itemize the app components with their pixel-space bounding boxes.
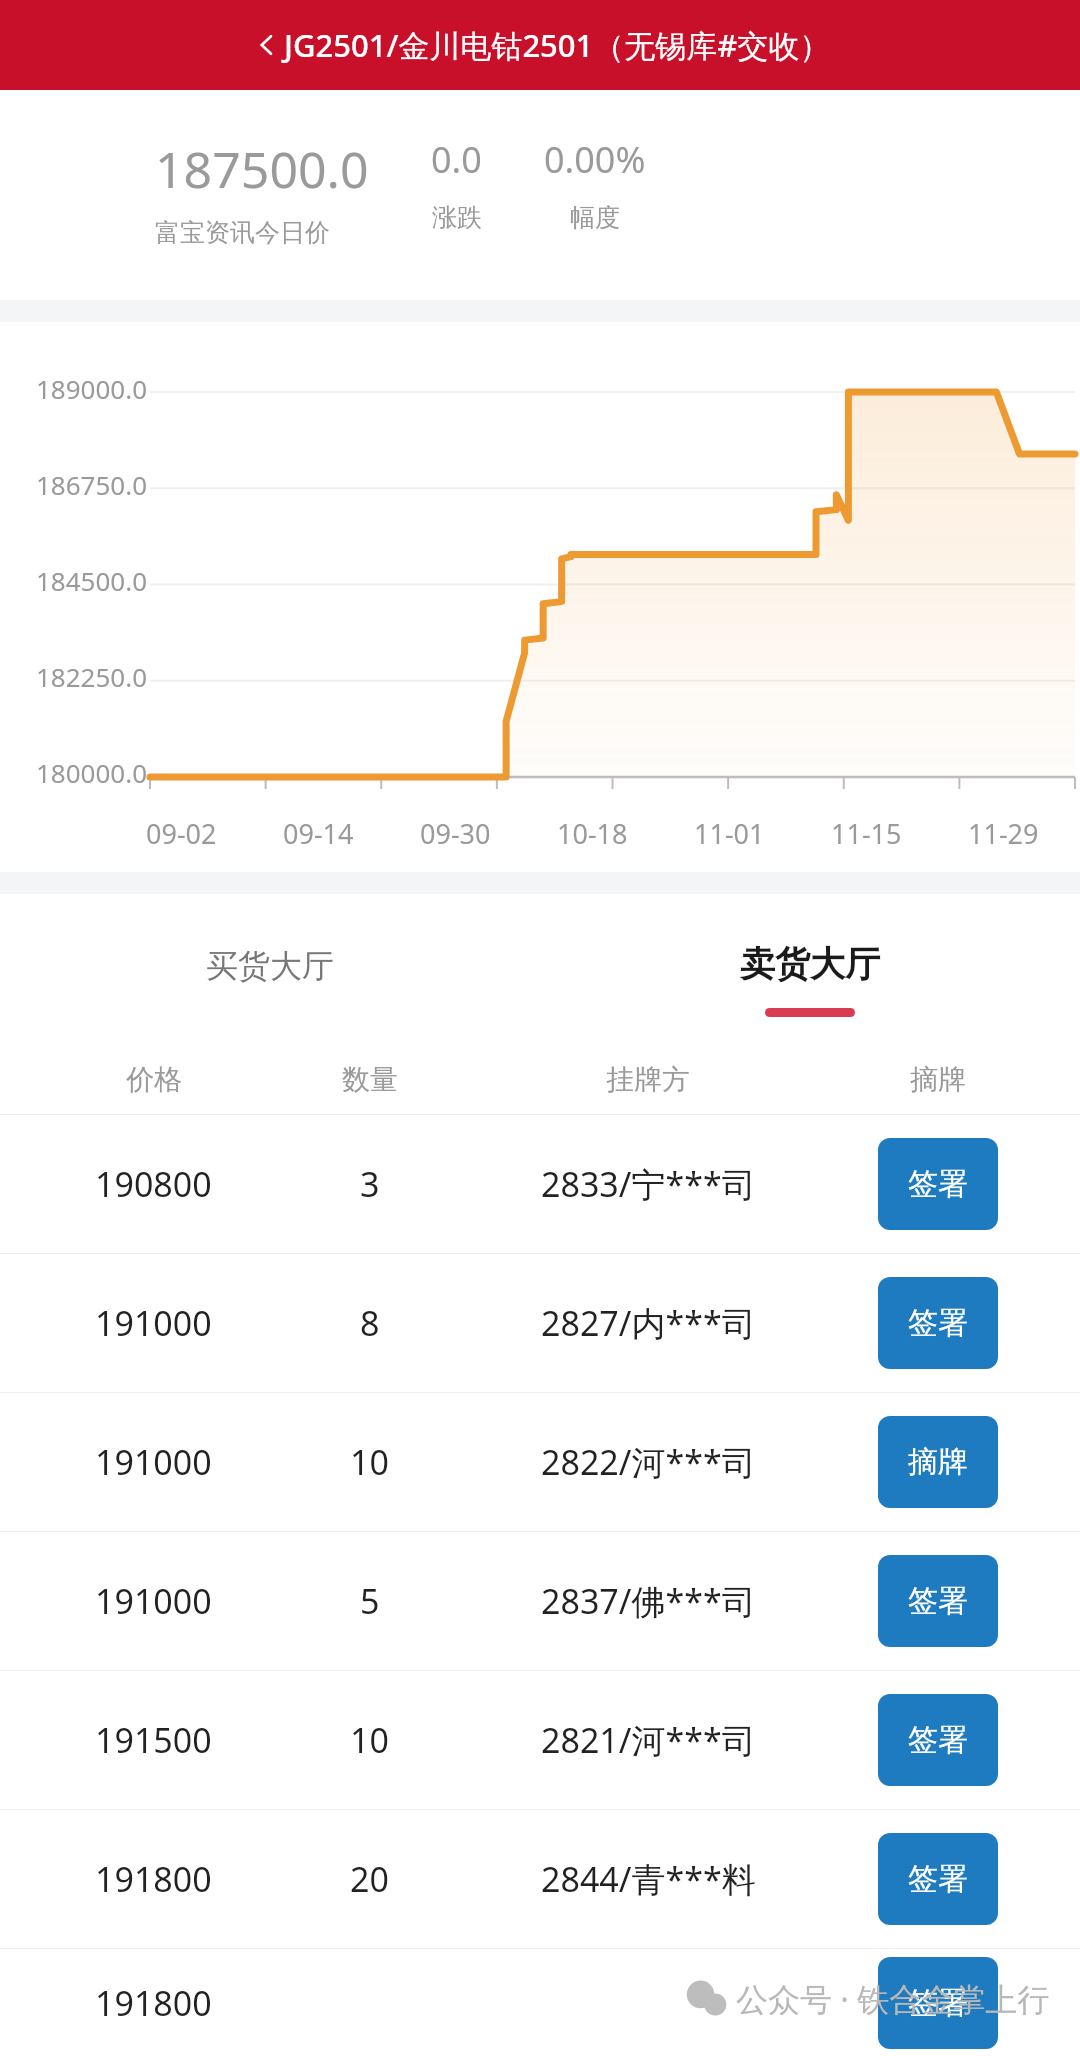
staticText: 5 [360,1578,380,1624]
button[interactable]: 191500 [0,1671,1080,1809]
button[interactable]: 191000 [0,1532,1080,1670]
staticText: 公众号 · 铁合金掌上行 [736,1977,1050,2021]
staticText: 2844/青***料 [541,1856,756,1902]
staticText: 2822/河***司 [541,1439,756,1485]
staticText: 8 [360,1300,380,1346]
staticText: 186750.0 [36,467,148,502]
staticText: 卖货大厅 [740,942,880,986]
staticText: 191000 [95,1439,212,1485]
button[interactable]: 签署 [878,1138,998,1230]
staticText: 191800 [95,1856,212,1902]
staticText: 10-18 [557,815,628,852]
staticText: 11-29 [968,815,1039,852]
staticText: 10 [350,1439,389,1485]
staticText: 2821/河***司 [541,1717,756,1763]
staticText: 富宝资讯今日价 [155,217,330,248]
staticText: 买货大厅 [206,946,334,986]
button[interactable]: 签署 [878,1957,998,2049]
staticText: 签署 [908,1582,968,1620]
staticText: 191500 [95,1717,212,1763]
button[interactable]: 191000 [0,1254,1080,1392]
button[interactable]: 191800 [0,1949,1080,2056]
staticText: 签署 [908,1304,968,1342]
button[interactable]: 191800 [0,1810,1080,1948]
button[interactable]: 卖货大厅 [540,894,1080,1044]
button[interactable]: 买货大厅 [0,894,540,1044]
staticText: 11-15 [831,815,902,852]
staticText: 2833/宁***司 [541,1161,756,1207]
staticText: 摘牌 [910,1062,966,1097]
button[interactable]: 190800 [0,1115,1080,1253]
staticText: 摘牌 [908,1443,968,1481]
staticText: 09-30 [420,815,491,852]
staticText: 0.00% [544,135,646,184]
button[interactable]: 签署 [878,1277,998,1369]
button[interactable]: Back [250,28,284,62]
staticText: 184500.0 [36,563,148,598]
staticText: 191800 [95,1980,212,2026]
staticText: 签署 [908,1860,968,1898]
staticText: 签署 [908,1984,968,2022]
staticText: 09-02 [146,815,217,852]
staticText: 2837/佛***司 [541,1578,756,1624]
staticText: 180000.0 [36,755,148,790]
staticText: 价格 [126,1062,182,1097]
staticText: 187500.0 [155,135,369,203]
staticText: 挂牌方 [606,1062,690,1097]
staticText: 191000 [95,1300,212,1346]
button[interactable]: 191000 [0,1393,1080,1531]
staticText: 幅度 [570,202,620,233]
staticText: 签署 [908,1721,968,1759]
staticText: 0.0 [431,135,482,184]
button[interactable]: 签署 [878,1555,998,1647]
staticText: 签署 [908,1165,968,1203]
staticText: 涨跌 [432,202,482,233]
button[interactable]: 签署 [878,1694,998,1786]
staticText: 190800 [95,1161,212,1207]
staticText: 10 [350,1717,389,1763]
staticText: 11-01 [694,815,765,852]
staticText: 182250.0 [36,659,148,694]
button[interactable]: 签署 [878,1833,998,1925]
staticText: JG2501/金川电钴2501（无锡库#交收） [284,24,831,66]
staticText: 2827/内***司 [541,1300,756,1346]
staticText: 20 [350,1856,389,1902]
staticText: 09-14 [283,815,354,852]
button[interactable]: 摘牌 [878,1416,998,1508]
staticText: 191000 [95,1578,212,1624]
staticText: 3 [360,1161,380,1207]
staticText: 数量 [342,1062,398,1097]
staticText: 189000.0 [36,371,148,406]
